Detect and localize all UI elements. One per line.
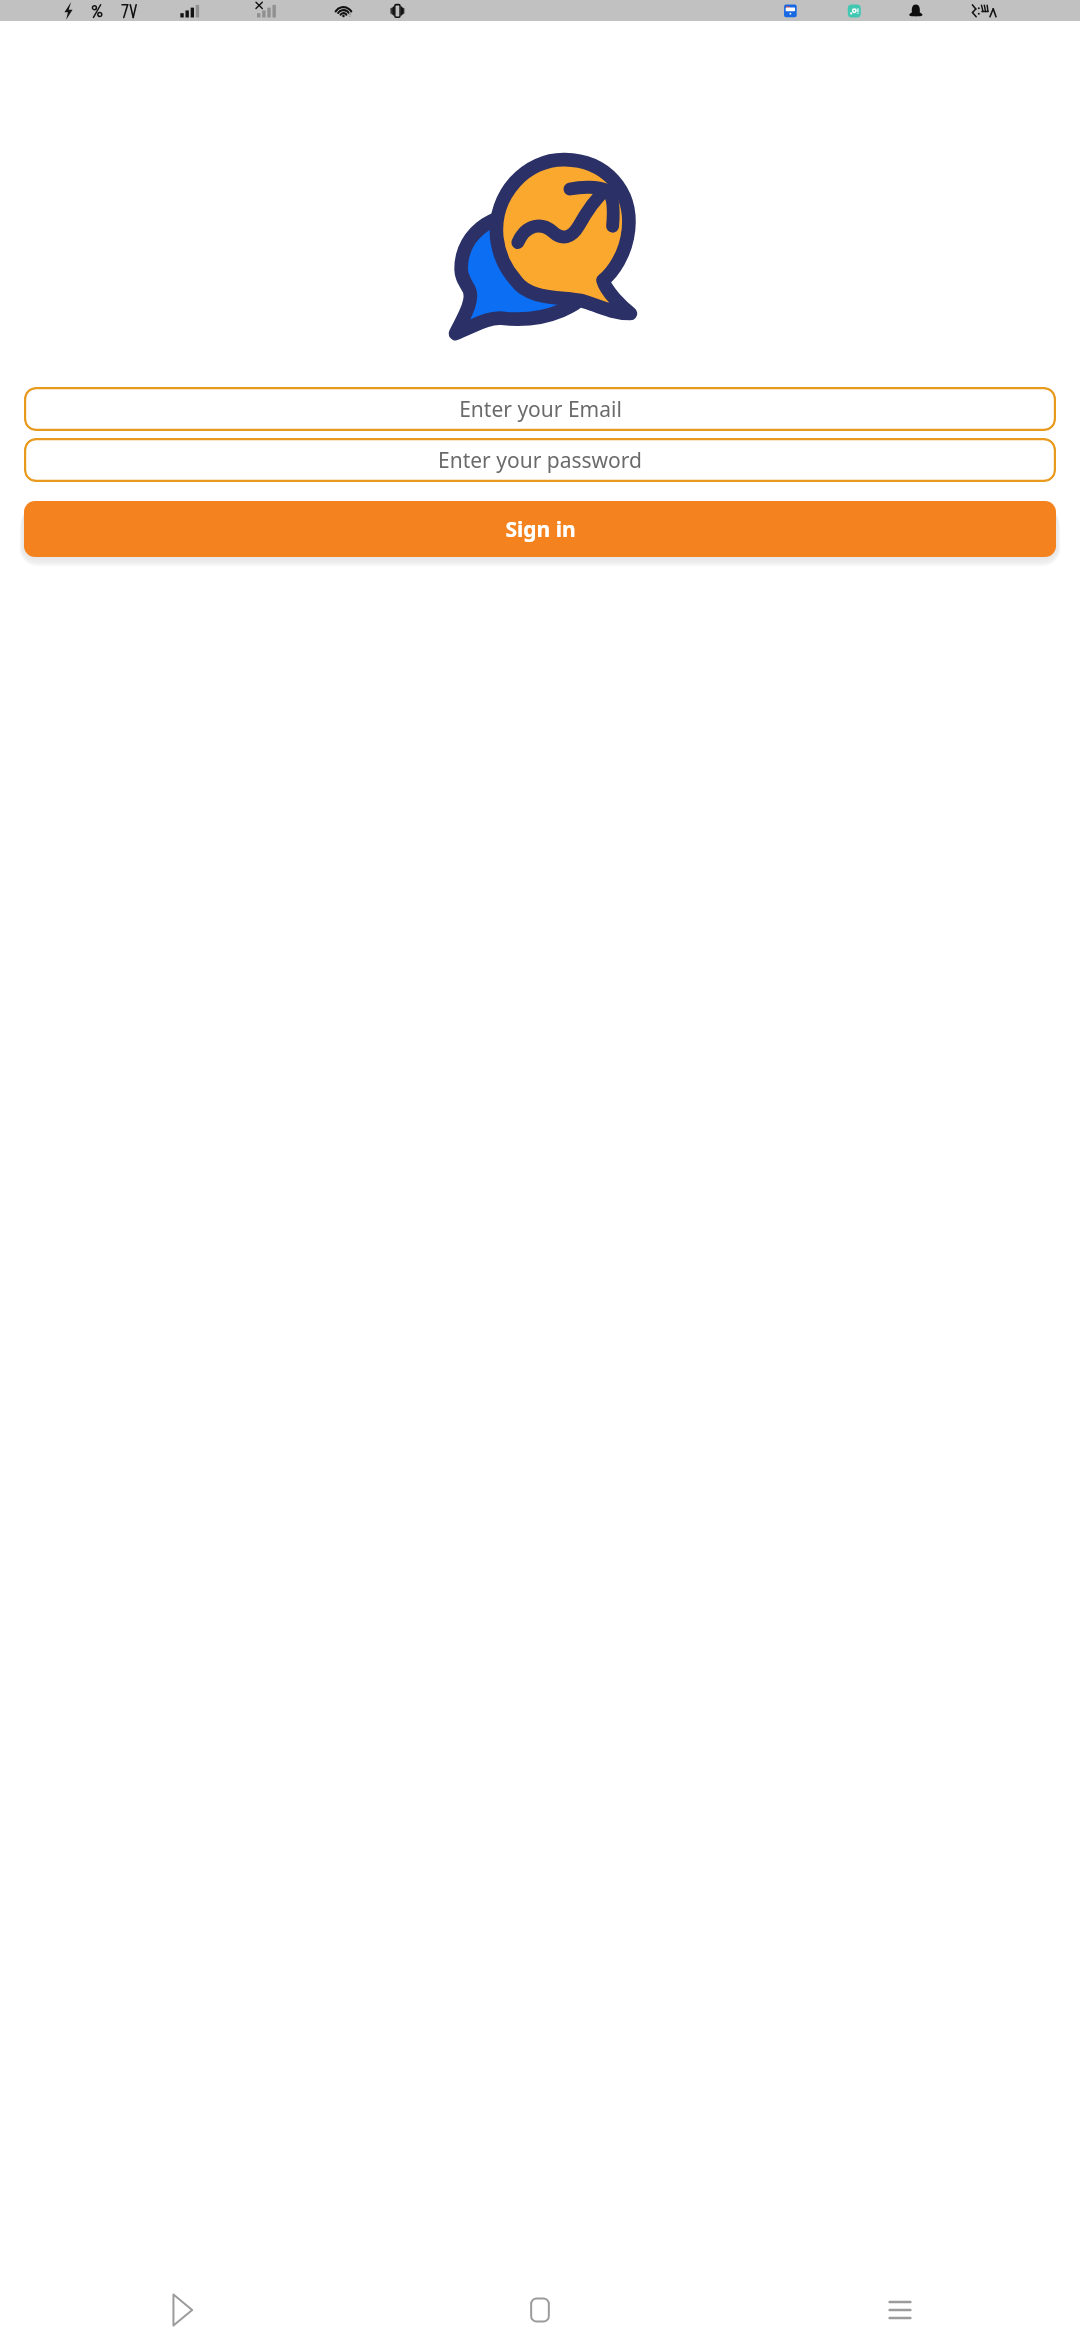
button[interactable]: Home (360, 2280, 720, 2340)
staticText: Sign in (505, 515, 576, 544)
staticText: Enter your Email (459, 395, 622, 424)
button[interactable]: Sign in (24, 501, 1056, 557)
button[interactable]: Recent apps (720, 2280, 1080, 2340)
button[interactable]: Enter your Email (24, 387, 1056, 431)
staticText: Enter your password (438, 446, 642, 475)
button[interactable]: Back (0, 2280, 360, 2340)
button[interactable]: Enter your password (24, 438, 1056, 482)
